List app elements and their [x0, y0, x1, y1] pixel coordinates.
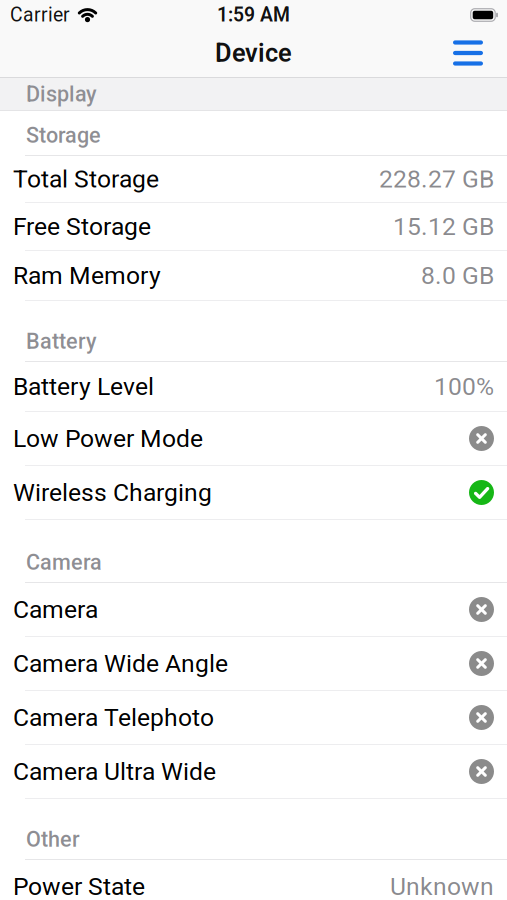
- staticText: Device: [215, 38, 292, 68]
- staticText: Camera Wide Angle: [13, 649, 228, 678]
- staticText: 8.0 GB: [421, 261, 494, 290]
- staticText: Camera Telephoto: [13, 703, 214, 732]
- staticText: Camera Ultra Wide: [13, 757, 216, 786]
- staticText: 15.12 GB: [393, 212, 494, 241]
- staticText: Camera: [26, 550, 102, 575]
- staticText: Power State: [13, 872, 145, 900]
- staticText: Free Storage: [13, 212, 151, 241]
- staticText: Total Storage: [13, 164, 159, 193]
- staticText: Unknown: [390, 872, 494, 900]
- staticText: Wireless Charging: [13, 478, 212, 507]
- staticText: Display: [26, 81, 97, 107]
- staticText: Camera: [13, 595, 98, 624]
- staticText: Ram Memory: [13, 261, 161, 290]
- staticText: Battery Level: [13, 372, 154, 401]
- staticText: Other: [26, 827, 80, 852]
- staticText: 228.27 GB: [379, 164, 494, 193]
- staticText: 1:59 AM: [217, 4, 290, 26]
- staticText: 100%: [434, 372, 494, 401]
- staticText: Carrier: [10, 4, 70, 26]
- staticText: Low Power Mode: [13, 424, 203, 453]
- staticText: Battery: [26, 329, 97, 354]
- staticText: Storage: [26, 123, 101, 148]
- button[interactable]: Menu: [453, 40, 483, 66]
